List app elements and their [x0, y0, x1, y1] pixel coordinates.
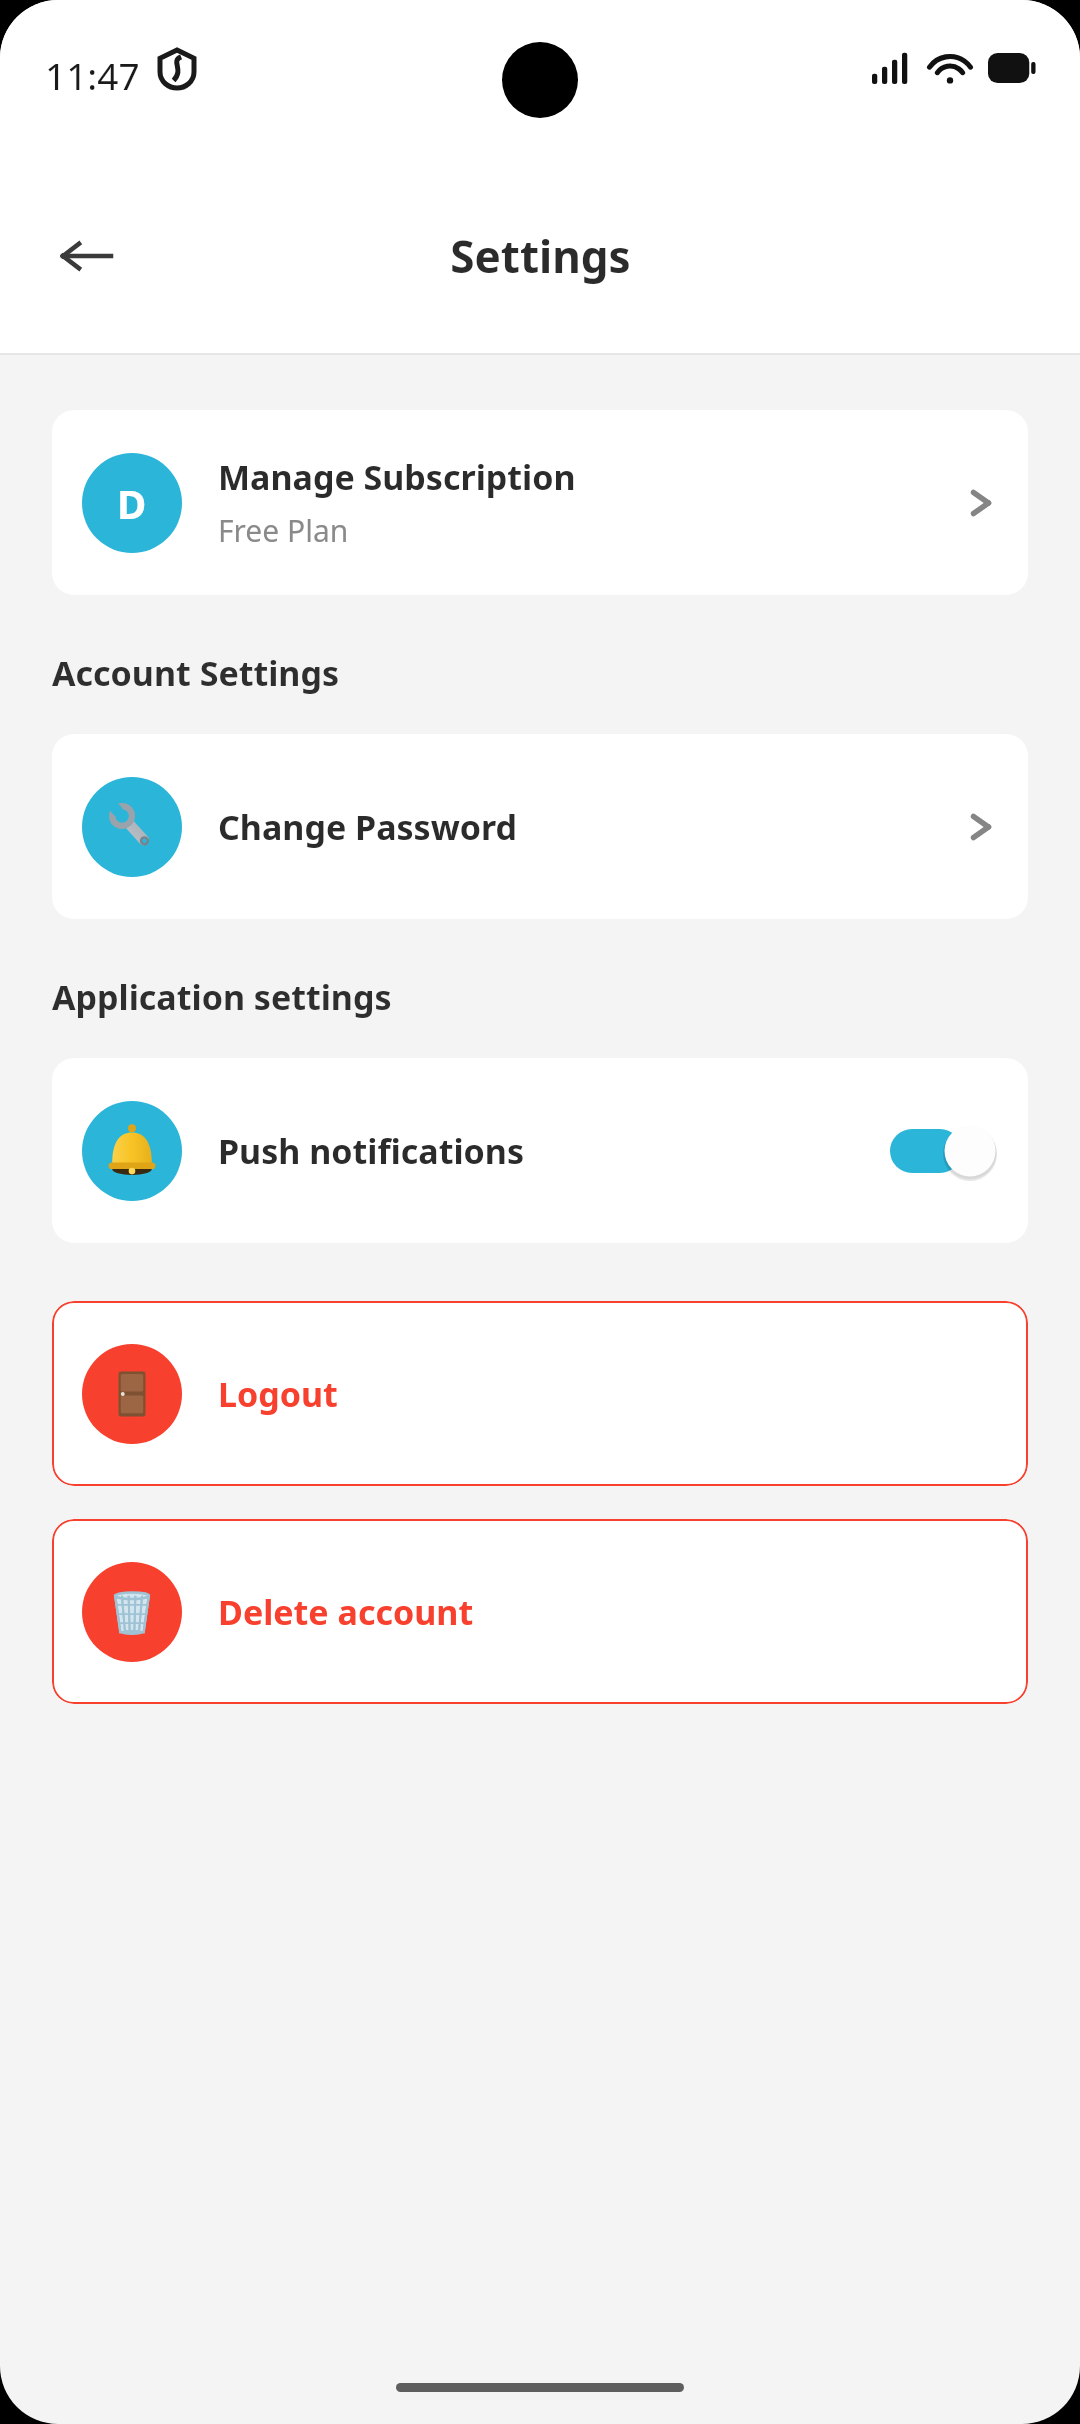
staticText: 11:47 — [45, 50, 140, 100]
button[interactable]: Change Password — [52, 734, 1028, 919]
staticText: Change Password — [218, 804, 964, 850]
button[interactable]: Back — [36, 206, 136, 306]
staticText: Account Settings — [52, 650, 340, 696]
button[interactable]: Push notifications toggle — [886, 1121, 998, 1181]
staticText: D — [117, 476, 147, 530]
staticText: Logout — [218, 1371, 338, 1417]
staticText: Manage Subscription — [218, 454, 576, 500]
staticText: Push notifications — [218, 1128, 886, 1174]
button[interactable]: D — [52, 410, 1028, 595]
button[interactable]: Delete account — [52, 1519, 1028, 1704]
staticText: Settings — [450, 226, 631, 286]
button[interactable]: Logout — [52, 1301, 1028, 1486]
staticText: Delete account — [218, 1589, 474, 1635]
staticText: Free Plan — [218, 510, 349, 551]
staticText: Application settings — [52, 974, 392, 1020]
button[interactable]: Push notifications — [52, 1058, 1028, 1243]
